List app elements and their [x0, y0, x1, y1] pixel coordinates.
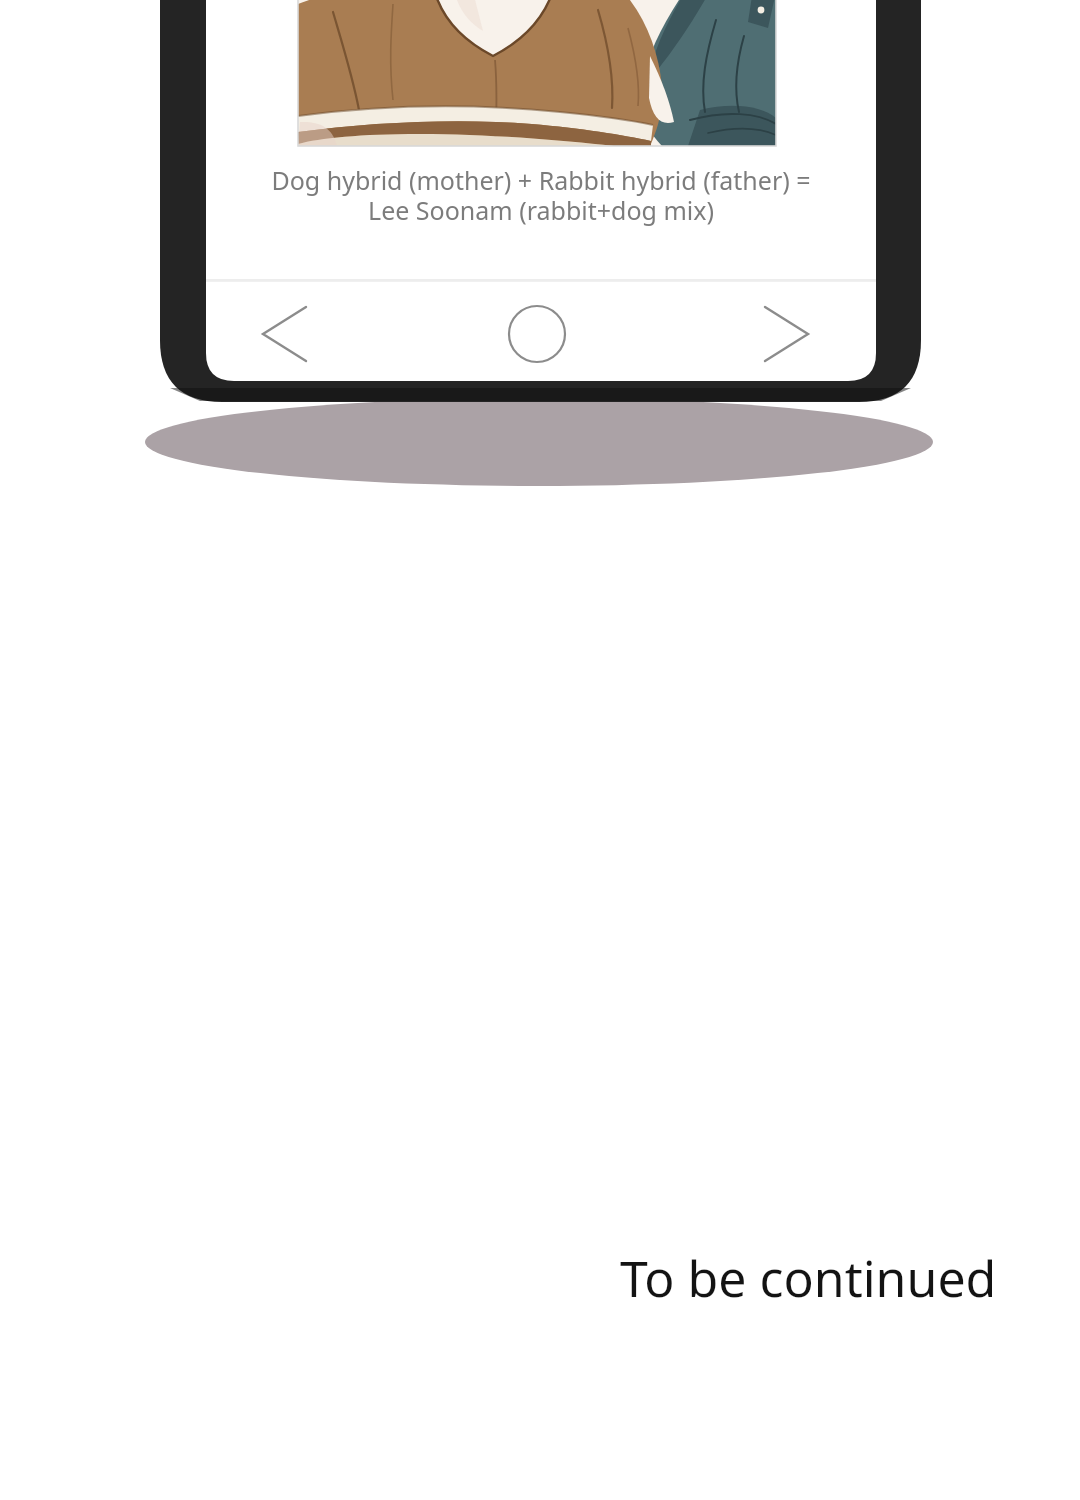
button[interactable]: Next episode — [740, 292, 832, 378]
button[interactable]: Previous episode — [240, 292, 332, 378]
staticText: Dog hybrid (mother) + Rabbit hybrid (fat… — [242, 163, 840, 228]
staticText: To be continued — [620, 1244, 997, 1312]
button[interactable]: Home — [494, 292, 582, 378]
